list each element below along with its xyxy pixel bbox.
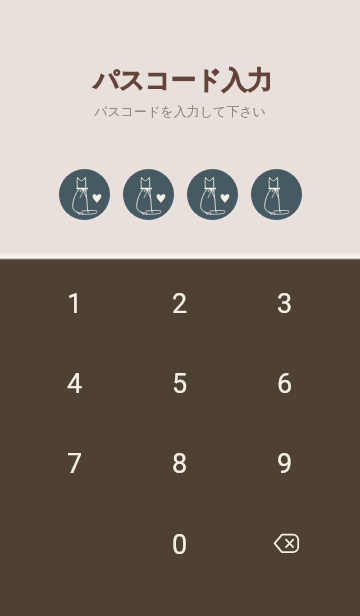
staticText: 5 xyxy=(172,368,188,400)
staticText: 3 xyxy=(277,288,293,320)
staticText: 9 xyxy=(277,448,293,480)
button[interactable]: 0 xyxy=(136,509,224,581)
staticText: 2 xyxy=(172,288,188,320)
staticText: 7 xyxy=(67,448,83,480)
button[interactable]: 4 xyxy=(31,348,119,420)
button[interactable]: 9 xyxy=(241,428,329,500)
staticText: 6 xyxy=(277,368,293,400)
button[interactable]: 1 xyxy=(31,268,119,340)
button[interactable]: 2 xyxy=(136,268,224,340)
button[interactable]: 6 xyxy=(241,348,329,420)
staticText: 8 xyxy=(172,448,188,480)
other: Delete xyxy=(271,528,303,560)
staticText: パスコードを入力して下さい xyxy=(94,103,266,119)
button[interactable]: 8 xyxy=(136,428,224,500)
button[interactable]: Delete xyxy=(243,508,331,580)
staticText: 4 xyxy=(67,368,83,400)
button[interactable]: 7 xyxy=(31,428,119,500)
button[interactable]: 3 xyxy=(241,268,329,340)
staticText: 0 xyxy=(172,529,188,561)
staticText: 1 xyxy=(67,288,83,320)
button[interactable]: 5 xyxy=(136,348,224,420)
staticText: パスコード入力 xyxy=(93,65,272,97)
